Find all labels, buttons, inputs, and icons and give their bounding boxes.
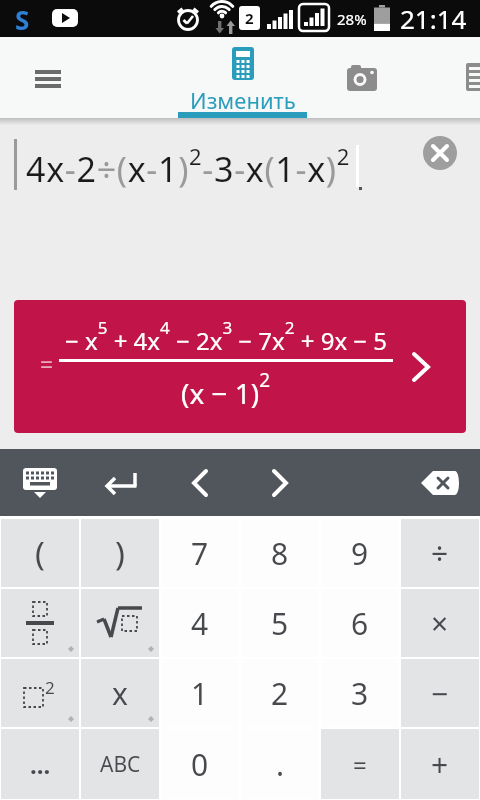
staticText: ( — [35, 531, 45, 576]
staticText: = — [353, 748, 367, 781]
button[interactable] — [25, 58, 71, 94]
button[interactable]: ABC — [81, 729, 159, 799]
button[interactable]: ) — [81, 519, 159, 587]
button[interactable] — [466, 63, 480, 93]
staticText: (x − 1)2 — [181, 367, 271, 412]
button[interactable] — [176, 461, 224, 505]
staticText: 3 — [351, 673, 369, 714]
button[interactable]: 2 — [241, 659, 319, 727]
staticText: 9 — [351, 533, 369, 574]
staticText: 4x-2÷(x-1)2-3-x(1-x)2 — [26, 141, 351, 192]
button[interactable]: ( — [1, 519, 79, 587]
staticText: 8 — [271, 533, 289, 574]
staticText: ÷ — [431, 533, 449, 574]
staticText: 0 — [191, 744, 209, 785]
button[interactable] — [414, 461, 468, 505]
button[interactable]: 0 — [161, 729, 239, 799]
staticText: 21:14 — [400, 1, 467, 36]
staticText: − x5 + 4x4 − 2x3 − 7x2 + 9x − 5 — [65, 316, 388, 357]
button[interactable]: Изменить — [178, 37, 307, 118]
button[interactable] — [256, 461, 304, 505]
button[interactable]: 3 — [321, 659, 399, 727]
button[interactable]: 6 — [321, 589, 399, 657]
staticText: S — [15, 2, 30, 37]
staticText: − — [431, 673, 449, 714]
staticText: × — [431, 603, 449, 644]
staticText: 2 — [245, 8, 254, 28]
staticText: ) — [115, 531, 125, 576]
button[interactable]: = — [321, 729, 399, 799]
button[interactable]: 8 — [241, 519, 319, 587]
button[interactable]: + — [401, 729, 479, 799]
staticText: 7 — [191, 533, 209, 574]
button[interactable]: 4 — [161, 589, 239, 657]
button[interactable]: 7 — [161, 519, 239, 587]
button[interactable]: − — [401, 659, 479, 727]
staticText: ... — [30, 748, 51, 781]
staticText: 2 — [271, 673, 289, 714]
staticText: . — [276, 744, 285, 785]
button[interactable]: 9 — [321, 519, 399, 587]
button[interactable] — [423, 136, 457, 170]
staticText: 5 — [271, 603, 289, 644]
button[interactable]: x — [81, 659, 159, 727]
staticText: 6 — [351, 603, 369, 644]
button[interactable]: × — [401, 589, 479, 657]
button[interactable] — [96, 461, 144, 505]
button[interactable]: 2 — [1, 659, 79, 727]
staticText: 1 — [191, 673, 209, 714]
button[interactable] — [1, 589, 79, 657]
button[interactable] — [16, 461, 64, 505]
staticText: 2 — [45, 676, 55, 699]
staticText: Изменить — [190, 85, 296, 115]
button[interactable]: 5 — [241, 589, 319, 657]
button[interactable]: ÷ — [401, 519, 479, 587]
button[interactable]: . — [241, 729, 319, 799]
staticText: + — [431, 744, 449, 785]
button[interactable]: 1 — [161, 659, 239, 727]
staticText: ABC — [100, 750, 141, 779]
staticText: x — [112, 673, 128, 714]
button[interactable] — [338, 52, 386, 94]
staticText: 28% — [337, 9, 367, 29]
staticText: 4 — [191, 603, 209, 644]
button[interactable]: = — [14, 300, 466, 433]
staticText: = — [40, 348, 54, 379]
button[interactable]: ... — [1, 729, 79, 799]
button[interactable] — [81, 589, 159, 657]
